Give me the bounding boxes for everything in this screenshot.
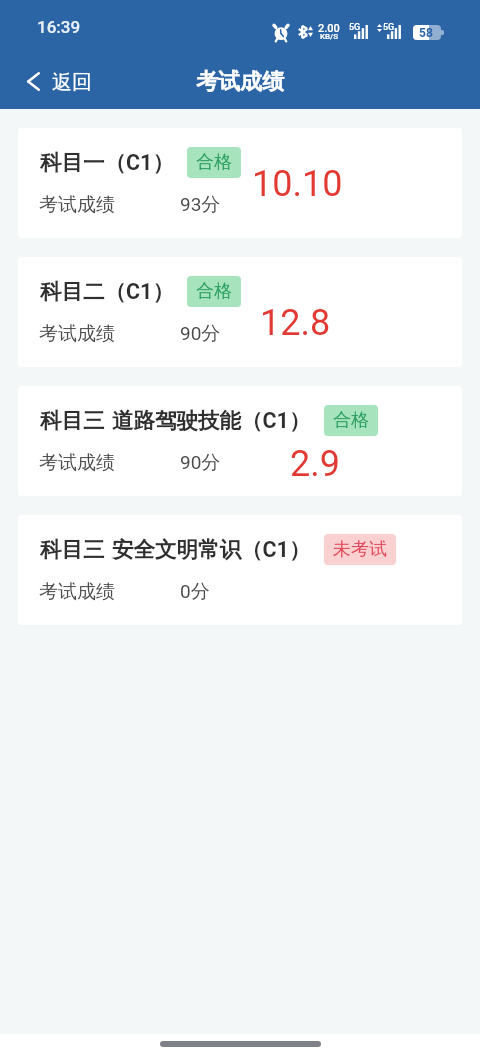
staticText: 科目一（C1） [40, 149, 174, 176]
staticText: 12.8 [260, 302, 331, 344]
staticText: 合格 [196, 280, 232, 303]
staticText: 2.00 [318, 22, 340, 35]
other: 返回 [27, 72, 40, 91]
other: Bluetooth [298, 25, 308, 39]
staticText: 16:39 [37, 17, 81, 37]
staticText: 90分 [180, 451, 221, 475]
staticText: 10.10 [252, 163, 343, 205]
staticText: KB/S [320, 32, 339, 41]
staticText: 考试成绩 [39, 193, 115, 217]
staticText: 科目三 [40, 536, 105, 563]
staticText: 5G [349, 22, 361, 33]
staticText: 0分 [180, 580, 210, 604]
button[interactable]: 返回 [0, 59, 106, 104]
staticText: 93分 [180, 193, 221, 217]
staticText: 未考试 [333, 538, 387, 561]
staticText: 科目三 [40, 407, 105, 434]
staticText: 90分 [180, 322, 221, 346]
other: Battery 58 percent [413, 25, 443, 40]
button[interactable]: 科目三 [18, 386, 462, 496]
other: Alarm [274, 24, 288, 40]
staticText: 科目二（C1） [40, 278, 174, 305]
staticText: 2.9 [290, 443, 340, 485]
staticText: 安全文明常识（C1） [112, 536, 311, 563]
staticText: 考试成绩 [196, 68, 284, 96]
button[interactable]: 科目三 [18, 515, 462, 625]
staticText: 合格 [333, 409, 369, 432]
staticText: 考试成绩 [39, 580, 115, 604]
staticText: 58 [419, 26, 433, 40]
staticText: 5G [383, 22, 395, 33]
staticText: 道路驾驶技能（C1） [112, 407, 311, 434]
staticText: 考试成绩 [39, 451, 115, 475]
staticText: 合格 [196, 151, 232, 174]
staticText: 考试成绩 [39, 322, 115, 346]
button[interactable]: 科目一（C1） [18, 128, 462, 238]
staticText: 返回 [52, 70, 92, 95]
button[interactable]: 科目二（C1） [18, 257, 462, 367]
